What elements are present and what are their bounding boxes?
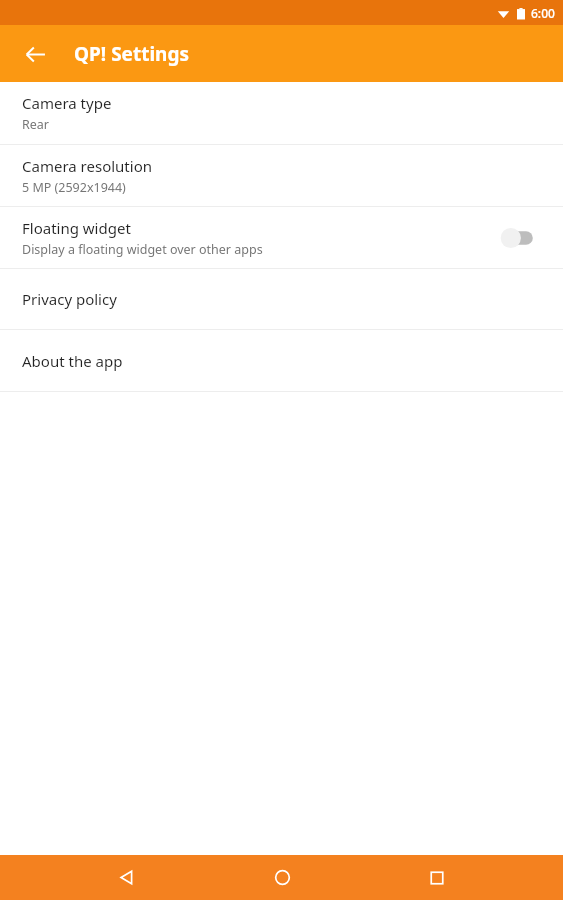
button[interactable]: Privacy policy: [0, 269, 563, 329]
button[interactable]: Floating widget: [0, 207, 563, 268]
staticText: Privacy policy: [22, 289, 117, 309]
button[interactable]: Back: [96, 855, 156, 900]
button[interactable]: Recent apps: [407, 855, 467, 900]
button[interactable]: Home: [252, 855, 312, 900]
staticText: Camera type: [22, 93, 112, 113]
button[interactable]: Back: [12, 31, 58, 77]
staticText: Rear: [22, 116, 50, 133]
staticText: About the app: [22, 351, 123, 371]
staticText: Floating widget: [22, 218, 131, 238]
staticText: QP! Settings: [74, 41, 190, 67]
button[interactable]: Camera resolution: [0, 145, 563, 206]
button[interactable]: Floating widget toggle: [497, 224, 543, 252]
staticText: Display a floating widget over other app…: [22, 241, 263, 258]
staticText: 6:00: [531, 5, 555, 21]
button[interactable]: About the app: [0, 330, 563, 391]
staticText: Camera resolution: [22, 156, 152, 176]
button[interactable]: Camera type: [0, 82, 563, 144]
staticText: 5 MP (2592x1944): [22, 179, 126, 196]
